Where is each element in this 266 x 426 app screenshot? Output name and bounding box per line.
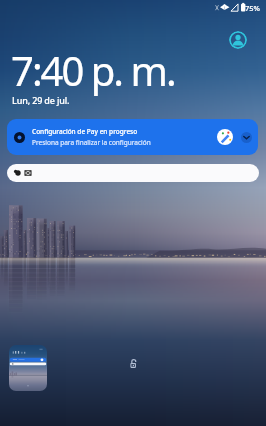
staticText: Presiona para finalizar la configuración (32, 138, 151, 147)
staticText: 7:40 p. m. (11, 43, 175, 97)
staticText: Configuración de Pay en progreso (32, 127, 138, 136)
button[interactable]: Configuración de Pay en progreso (7, 119, 258, 155)
button[interactable] (7, 164, 259, 182)
button[interactable]: User profile (229, 31, 247, 49)
button[interactable]: Unlock (125, 355, 142, 372)
button[interactable]: Expand notification (241, 132, 252, 143)
button[interactable]: Wallpaper preview (9, 345, 47, 391)
staticText: 75% (245, 3, 260, 13)
staticText: Lun, 29 de jul. (12, 94, 70, 106)
